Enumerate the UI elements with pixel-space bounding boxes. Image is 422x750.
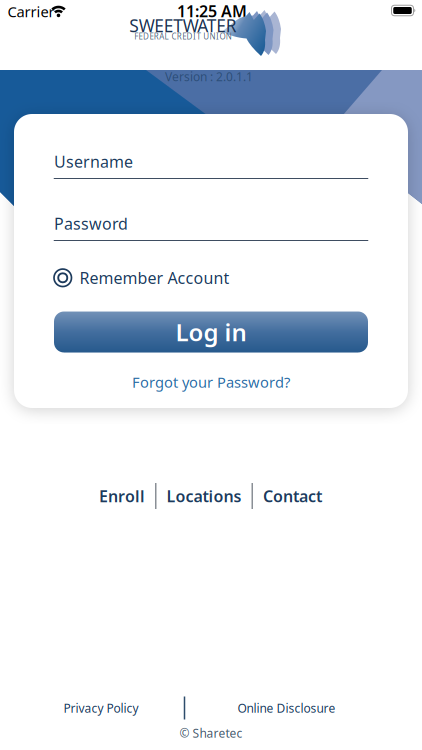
staticText: Carrier <box>7 2 54 21</box>
staticText: Forgot your Password? <box>132 372 290 392</box>
button[interactable]: Forgot your Password? <box>132 372 290 392</box>
staticText: Username <box>54 151 133 172</box>
button[interactable]: Online Disclosure <box>237 700 335 716</box>
staticText: FEDERAL CREDIT UNION <box>134 31 232 42</box>
button[interactable]: Enroll <box>99 485 145 507</box>
staticText: Privacy Policy <box>63 700 138 716</box>
button[interactable]: Log in <box>54 311 368 352</box>
button[interactable]: Remember Account <box>54 267 368 288</box>
staticText: © Sharetec <box>179 725 242 741</box>
button[interactable]: Privacy Policy <box>63 700 138 716</box>
staticText: Log in <box>175 316 246 348</box>
staticText: Online Disclosure <box>237 700 335 716</box>
staticText: SWEETWATER <box>129 14 237 37</box>
staticText: Remember Account <box>79 267 229 288</box>
staticText: Enroll <box>99 485 145 507</box>
button[interactable]: Contact <box>263 485 322 507</box>
staticText: Locations <box>166 485 241 507</box>
staticText: Password <box>54 213 128 234</box>
staticText: Contact <box>263 485 322 507</box>
staticText: 11:25 AM <box>177 0 247 22</box>
button[interactable]: Locations <box>166 485 241 507</box>
staticText: Version : 2.0.1.1 <box>165 68 253 84</box>
